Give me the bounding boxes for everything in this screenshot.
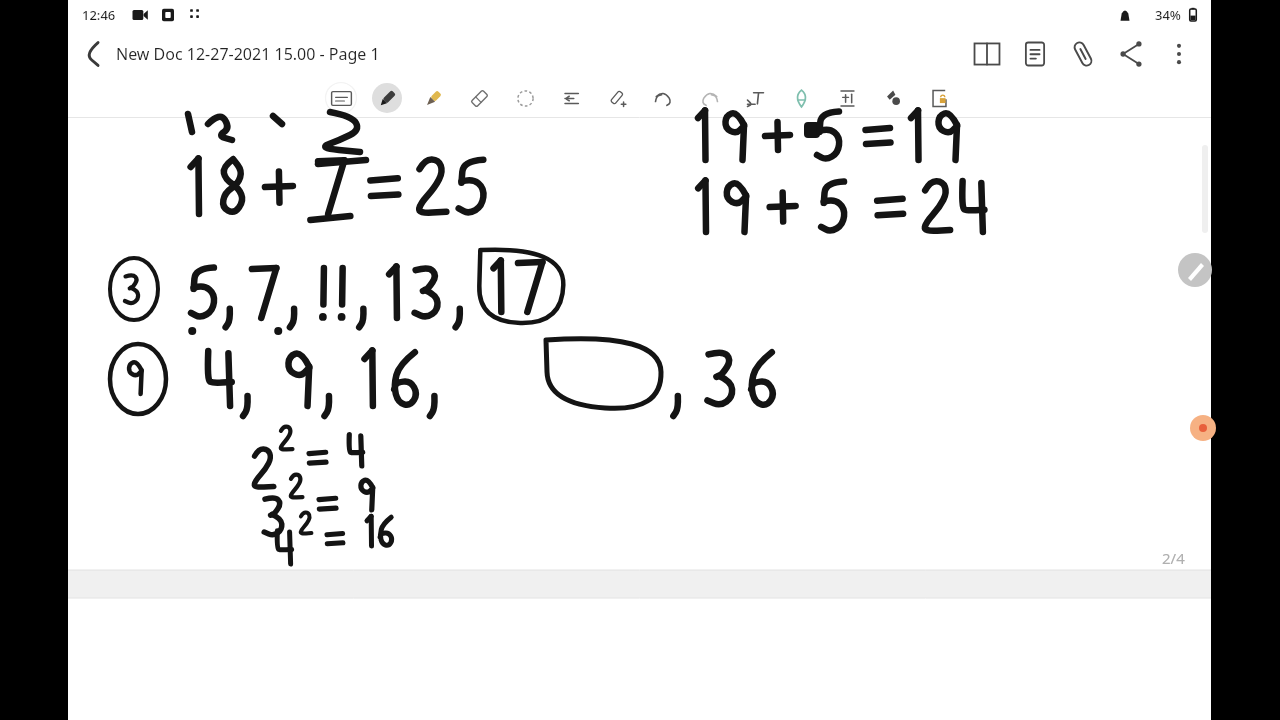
button[interactable]: Attach (1059, 30, 1107, 78)
button[interactable]: Lasso select (502, 78, 548, 118)
button[interactable]: Shape recognition (778, 78, 824, 118)
staticText: New Doc 12-27-2021 15.00 - Page 1 (116, 43, 380, 65)
button[interactable]: Align (548, 78, 594, 118)
button[interactable]: Notebook (963, 30, 1011, 78)
button[interactable]: Color (1183, 410, 1213, 440)
button[interactable]: Lock (916, 78, 962, 118)
button[interactable]: Pen tool (1176, 250, 1210, 284)
button[interactable]: Eraser (456, 78, 502, 118)
button[interactable]: Back (68, 31, 114, 77)
button[interactable]: Ink color (870, 78, 916, 118)
button[interactable]: Pen (364, 78, 410, 118)
button[interactable]: More options (1155, 30, 1203, 78)
button[interactable]: Share (1107, 30, 1155, 78)
button[interactable]: Text box (318, 78, 364, 118)
button[interactable]: Redo (686, 78, 732, 118)
button[interactable]: Text (732, 78, 778, 118)
button[interactable]: Undo (640, 78, 686, 118)
staticText: 34% (1155, 6, 1181, 24)
button[interactable]: Add pen (594, 78, 640, 118)
staticText: 2/4 (1162, 548, 1185, 568)
button[interactable]: Insert space (824, 78, 870, 118)
button[interactable]: Highlighter (410, 78, 456, 118)
staticText: 12:46 (82, 6, 116, 24)
button[interactable]: Notes (1011, 30, 1059, 78)
